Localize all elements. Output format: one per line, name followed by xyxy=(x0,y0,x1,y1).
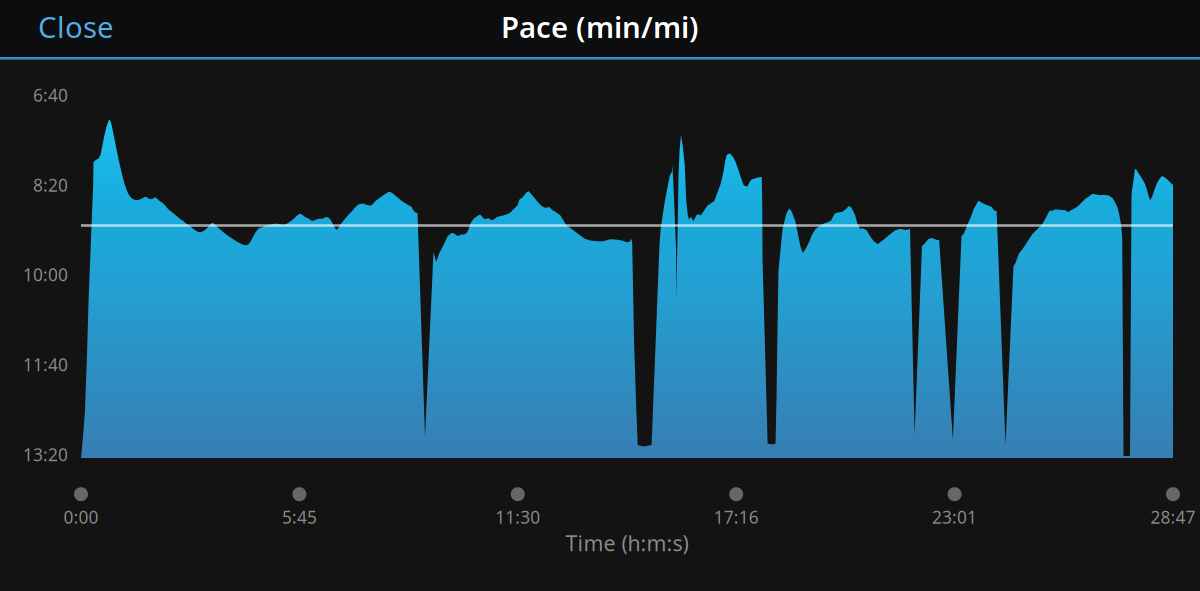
staticText: 5:45 xyxy=(282,505,317,528)
staticText: 13:20 xyxy=(23,443,68,466)
staticText: 10:00 xyxy=(23,263,68,286)
staticText: 6:40 xyxy=(33,83,68,106)
staticText: 0:00 xyxy=(63,505,98,528)
staticText: Time (h:m:s) xyxy=(565,529,688,557)
staticText: 11:30 xyxy=(495,505,540,528)
staticText: Close xyxy=(38,7,114,46)
staticText: Pace (min/mi) xyxy=(501,7,699,46)
staticText: 23:01 xyxy=(932,505,977,528)
button[interactable]: Close xyxy=(26,0,126,56)
staticText: 17:16 xyxy=(714,505,759,528)
staticText: 28:47 xyxy=(1150,505,1195,528)
staticText: 8:20 xyxy=(33,173,68,196)
staticText: 11:40 xyxy=(23,353,68,376)
